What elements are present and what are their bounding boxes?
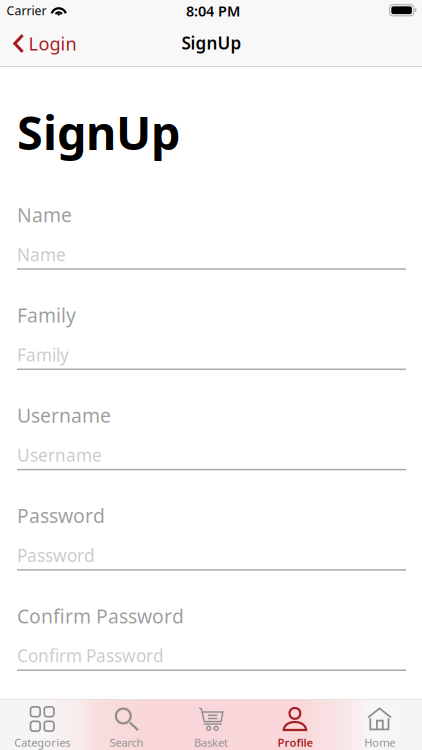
staticText: Name	[17, 201, 72, 228]
button[interactable]: Confirm Password	[0, 0, 422, 750]
button[interactable]: SignUp	[169, 23, 253, 63]
staticText: Profile	[277, 735, 313, 750]
button[interactable]: Username	[0, 0, 422, 750]
button[interactable]: Search	[84, 699, 169, 750]
staticText: Password	[17, 544, 95, 567]
staticText: Confirm Password	[17, 603, 184, 629]
staticText: Name	[17, 243, 66, 266]
staticText: Username	[17, 443, 102, 467]
staticText: Search	[110, 735, 144, 750]
button[interactable]: Basket	[169, 699, 253, 750]
staticText: 8:04 PM	[186, 1, 240, 21]
button[interactable]: Password	[0, 0, 422, 750]
staticText: Confirm Password	[17, 644, 164, 667]
button[interactable]: Name	[0, 0, 422, 750]
staticText: Categories	[14, 735, 70, 750]
staticText: Carrier	[7, 2, 47, 19]
staticText: Home	[364, 735, 395, 750]
button[interactable]: Categories	[0, 699, 84, 750]
button[interactable]: Profile	[253, 699, 338, 750]
button[interactable]: Login	[5, 22, 84, 65]
staticText: SignUp	[17, 100, 180, 164]
staticText: Basket	[194, 735, 228, 750]
staticText: SignUp	[181, 31, 241, 55]
button[interactable]: Home	[338, 699, 422, 750]
staticText: Login	[28, 31, 76, 56]
staticText: Password	[17, 502, 105, 529]
staticText: Family	[17, 302, 76, 328]
staticText: Family	[17, 343, 69, 366]
button[interactable]: Family	[0, 0, 422, 750]
staticText: Username	[17, 402, 111, 428]
